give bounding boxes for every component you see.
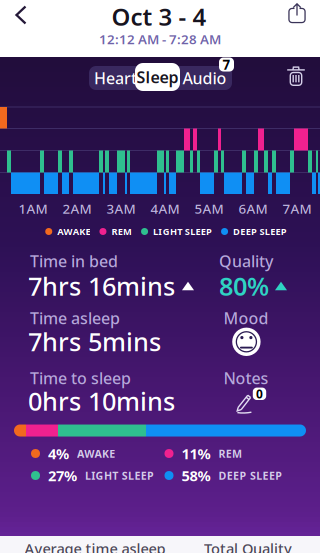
- staticText: 6AM: [238, 200, 267, 217]
- staticText: Quality: [219, 250, 273, 272]
- staticText: Heart: [94, 67, 137, 89]
- staticText: 7AM: [282, 200, 311, 217]
- button[interactable]: Heart: [91, 66, 139, 90]
- staticText: Mood: [223, 307, 268, 329]
- staticText: Sleep: [136, 66, 178, 88]
- button[interactable]: Share: [285, 2, 309, 28]
- staticText: Oct 3 - 4: [111, 1, 206, 32]
- staticText: Time in bed: [30, 250, 118, 272]
- button[interactable]: Back: [6, 0, 36, 29]
- staticText: 27%: [48, 466, 77, 485]
- staticText: AWAKE: [77, 446, 115, 461]
- staticText: LIGHT SLEEP: [85, 468, 154, 483]
- staticText: 58%: [181, 466, 210, 485]
- staticText: Time asleep: [30, 307, 120, 329]
- staticText: REM: [218, 446, 242, 461]
- staticText: 3AM: [106, 200, 135, 217]
- button[interactable]: Mood: [230, 326, 262, 358]
- staticText: 4%: [48, 444, 69, 463]
- button[interactable]: Audio: [178, 66, 230, 90]
- staticText: 11%: [181, 444, 210, 463]
- staticText: 7: [222, 56, 230, 73]
- button[interactable]: Sleep: [135, 63, 180, 91]
- staticText: 0: [256, 386, 263, 402]
- staticText: 2AM: [62, 200, 91, 217]
- staticText: 12:12 AM - 7:28 AM: [99, 30, 221, 48]
- staticText: AWAKE: [57, 225, 90, 238]
- staticText: 7hrs 5mins: [28, 325, 161, 358]
- button[interactable]: Edit notes: [235, 385, 269, 415]
- staticText: DEEP SLEEP: [233, 225, 287, 238]
- staticText: LIGHT SLEEP: [153, 225, 212, 238]
- staticText: Total Quality: [204, 539, 292, 553]
- staticText: REM: [111, 225, 132, 238]
- staticText: 0hrs 10mins: [28, 384, 175, 418]
- staticText: 4AM: [150, 200, 179, 217]
- staticText: DEEP SLEEP: [218, 468, 282, 483]
- staticText: 80%: [219, 269, 269, 303]
- staticText: 5AM: [194, 200, 223, 217]
- button[interactable]: Delete: [285, 64, 307, 90]
- staticText: 7hrs 16mins: [28, 269, 175, 303]
- staticText: Time to sleep: [30, 367, 131, 389]
- staticText: Average time asleep: [24, 539, 165, 553]
- staticText: 1AM: [18, 200, 47, 217]
- staticText: Notes: [223, 367, 268, 389]
- staticText: Audio: [182, 67, 226, 89]
